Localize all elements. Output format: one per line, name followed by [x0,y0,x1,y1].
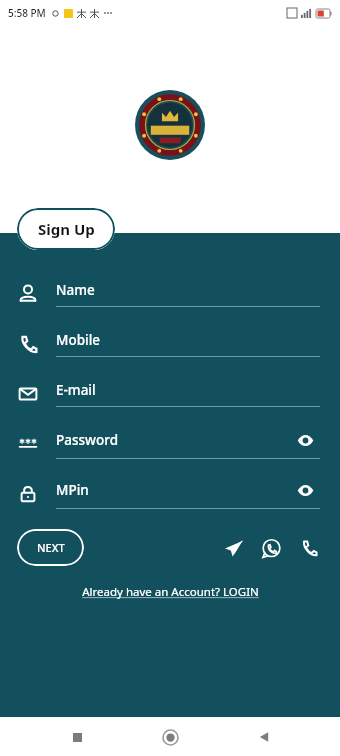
button[interactable]: Name [0,277,340,311]
button[interactable]: Sign Up [17,208,115,250]
staticText: Sign Up [38,219,95,239]
staticText: MPin [56,481,294,499]
button[interactable]: Toggle Password visibility [294,429,316,451]
button[interactable]: Call [294,533,324,563]
button[interactable]: Toggle MPin visibility [294,479,316,501]
button[interactable]: Telegram [218,533,248,563]
button[interactable]: Mobile [0,327,340,361]
staticText: Name [56,281,320,299]
button[interactable]: Home [153,720,187,754]
button[interactable]: Recents [60,720,94,754]
button[interactable]: Back [247,720,281,754]
staticText: NEXT [37,540,65,555]
staticText: Already have an Account? LOGIN [82,584,259,600]
button[interactable]: E-mail [0,377,340,411]
button[interactable]: MPin [0,477,340,511]
button[interactable]: WhatsApp [256,533,286,563]
button[interactable]: Password [0,427,340,461]
staticText: E-mail [56,381,320,399]
staticText: Password [56,431,294,449]
button[interactable]: NEXT [17,529,84,566]
staticText: Mobile [56,331,320,349]
staticText: 5:58 PM [8,6,46,20]
button[interactable]: Already have an Account? LOGIN [76,582,265,602]
